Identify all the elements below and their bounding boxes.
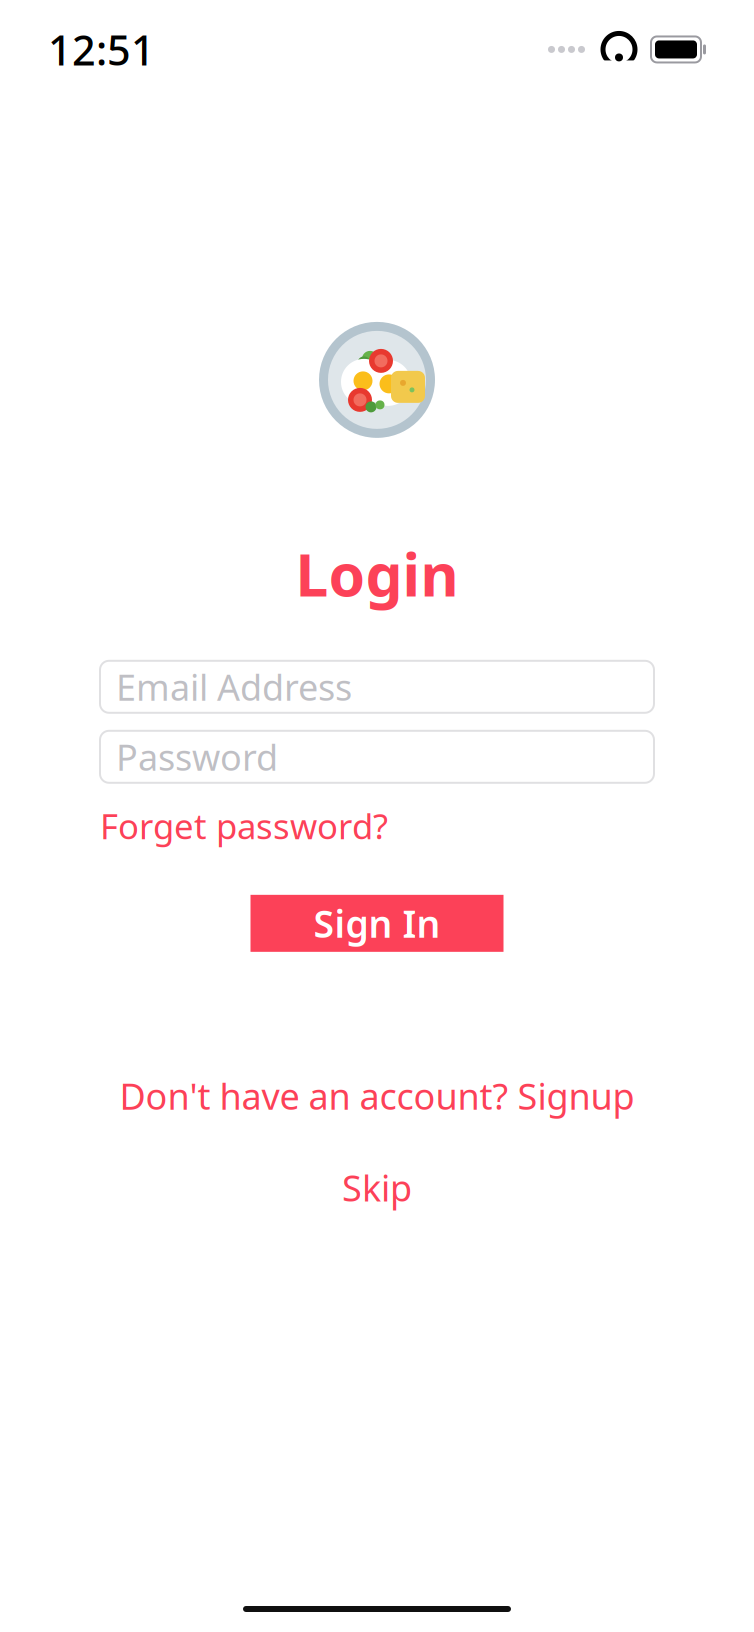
button[interactable]: Password	[0, 731, 754, 783]
staticText: Sign In	[313, 898, 440, 948]
staticText: Skip	[342, 1164, 412, 1211]
button[interactable]: Sign In	[250, 895, 503, 952]
staticText: Password	[116, 733, 278, 781]
staticText: 12:51	[48, 22, 155, 77]
staticText: Login	[295, 535, 458, 613]
button[interactable]: Skip	[342, 1164, 412, 1211]
staticText: Don't have an account? Signup	[119, 1072, 634, 1120]
button[interactable]: Forget password?	[100, 803, 388, 849]
button[interactable]: Email Address	[0, 661, 754, 713]
staticText: Email Address	[116, 663, 352, 711]
staticText: Forget password?	[100, 803, 388, 849]
button[interactable]: Don't have an account? Signup	[119, 1072, 634, 1120]
